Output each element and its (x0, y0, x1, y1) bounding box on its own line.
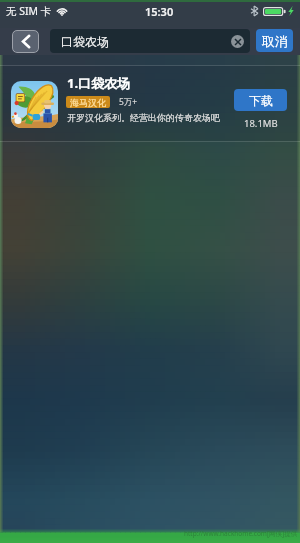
staticText: http://www.hackhome.com[网侠]提供 (184, 529, 298, 538)
staticText: 下载 (249, 93, 273, 108)
button[interactable]: 取消 (256, 29, 293, 52)
button[interactable]: 1.口袋农场 (0, 66, 300, 141)
button[interactable]: 口袋农场 (50, 29, 250, 53)
staticText: 海马汉化 (70, 97, 106, 108)
staticText: 开罗汉化系列。经营出你的传奇农场吧 (67, 112, 220, 123)
staticText: 15:30 (145, 4, 174, 19)
staticText: 18.1MB (244, 117, 278, 130)
staticText: 无 SIM 卡 (6, 4, 52, 18)
button[interactable]: Back (12, 30, 39, 53)
staticText: 取消 (262, 33, 288, 49)
staticText: 5万+ (119, 96, 138, 108)
button[interactable]: Clear text (231, 35, 244, 48)
staticText: 1.口袋农场 (67, 74, 131, 92)
button[interactable]: 下载 (234, 89, 287, 111)
staticText: 口袋农场 (61, 34, 109, 49)
